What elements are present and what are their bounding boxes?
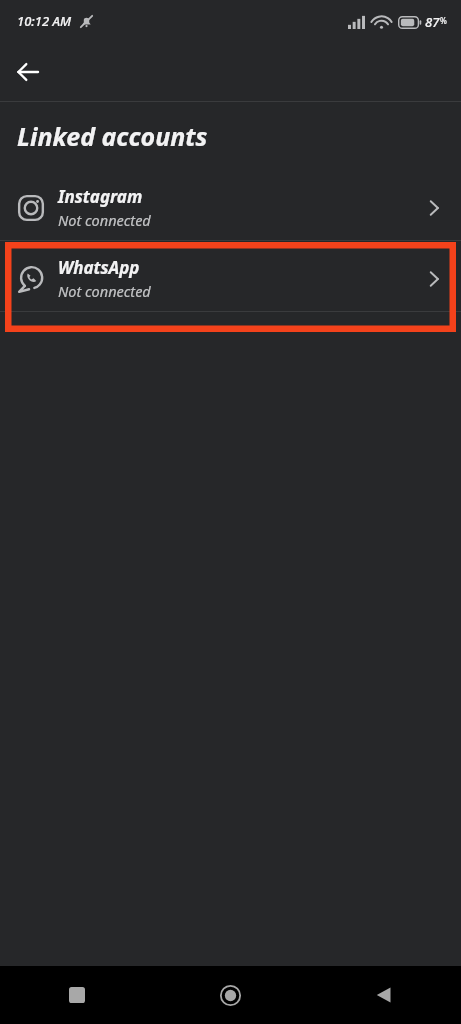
staticText: 10:12 AM [17, 12, 72, 30]
button[interactable]: Instagram [0, 175, 461, 240]
button[interactable]: Recents [0, 966, 153, 1024]
staticText: Linked accounts [17, 119, 208, 153]
staticText: Not connected [58, 210, 151, 230]
button[interactable]: Back [6, 50, 50, 94]
staticText: Instagram [58, 185, 143, 208]
button[interactable]: Home [153, 966, 307, 1024]
staticText: Not connected [58, 281, 151, 301]
staticText: % [440, 15, 447, 26]
staticText: 87 [425, 13, 440, 31]
button[interactable]: WhatsApp [0, 246, 461, 311]
button[interactable]: Back [307, 966, 461, 1024]
staticText: WhatsApp [58, 256, 140, 279]
